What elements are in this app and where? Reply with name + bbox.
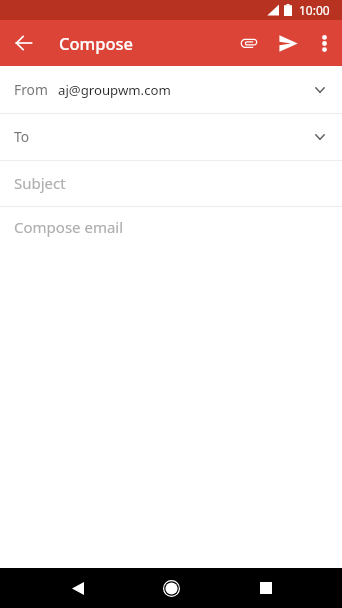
staticText: Compose email bbox=[14, 217, 124, 237]
button[interactable]: More options bbox=[306, 20, 342, 66]
button[interactable]: Compose email bbox=[0, 207, 342, 568]
staticText: Compose bbox=[59, 32, 133, 54]
button[interactable]: To bbox=[0, 114, 342, 161]
button[interactable]: Recent apps bbox=[242, 568, 289, 608]
button[interactable]: Back bbox=[10, 29, 38, 57]
button[interactable]: Home bbox=[148, 568, 195, 608]
button[interactable]: Send bbox=[271, 20, 306, 66]
staticText: 10:00 bbox=[299, 2, 330, 18]
staticText: From bbox=[14, 80, 48, 99]
button[interactable]: Subject bbox=[0, 161, 342, 207]
staticText: To bbox=[14, 127, 30, 146]
staticText: Subject bbox=[14, 173, 66, 193]
button[interactable]: From bbox=[0, 66, 342, 114]
button[interactable]: Attach file bbox=[226, 20, 271, 66]
staticText: aj@groupwm.com bbox=[58, 81, 171, 99]
button[interactable]: Back bbox=[54, 568, 101, 608]
